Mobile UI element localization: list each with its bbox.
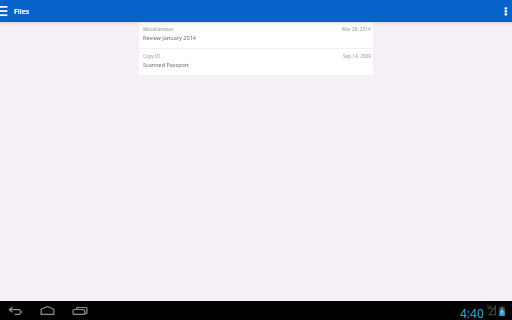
staticText: Copy ID (143, 53, 160, 59)
staticText: Mar 26, 2014 (342, 26, 371, 32)
button[interactable]: Open navigation drawer (0, 0, 13, 22)
staticText: Scanned Passport (143, 61, 190, 68)
button[interactable]: More options (498, 0, 512, 22)
staticText: Sep 14, 2009 (343, 53, 371, 59)
staticText: Miscellaneous (143, 26, 174, 32)
button[interactable]: Recent apps (71, 301, 89, 320)
staticText: Review January 2014 (143, 34, 196, 41)
button[interactable]: Back (6, 301, 24, 320)
button[interactable]: Miscellaneous (139, 22, 373, 48)
button[interactable]: Home (39, 301, 57, 320)
staticText: 4:40 (460, 305, 484, 320)
staticText: Files (14, 6, 30, 16)
button[interactable]: Copy ID (139, 49, 373, 75)
